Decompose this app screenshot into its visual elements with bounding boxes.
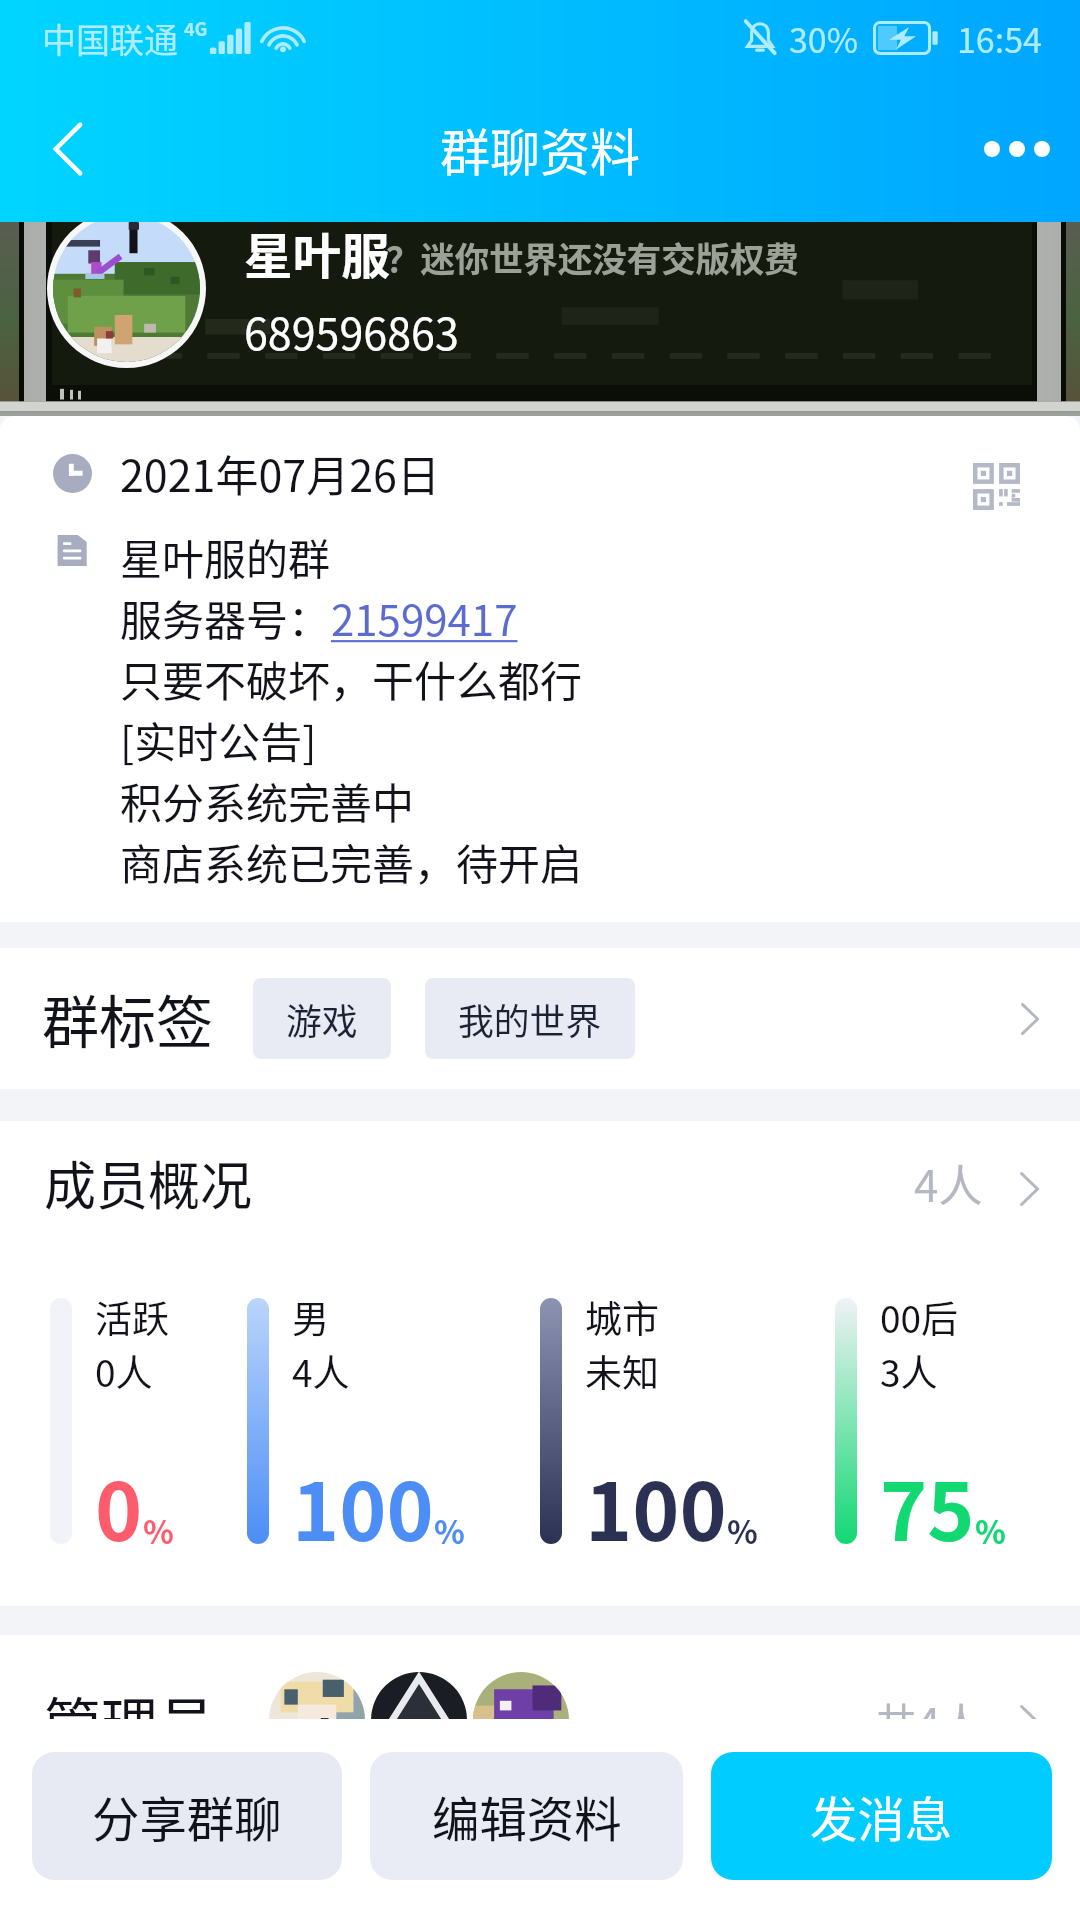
staticText: 只要不破坏，干什么都行 <box>120 648 583 709</box>
staticText: 城市 <box>585 1290 659 1344</box>
staticText: 4G <box>184 15 208 41</box>
staticText: 发消息 <box>810 1782 953 1851</box>
staticText: % <box>727 1507 758 1553</box>
staticText: 管理员 <box>44 1679 215 1762</box>
staticText: 4人 <box>292 1344 350 1398</box>
staticText: 编辑资料 <box>432 1782 622 1851</box>
staticText: 积分系统完善中 <box>120 770 415 831</box>
staticText: 75 <box>880 1448 975 1564</box>
staticText: 共4人 <box>875 1690 983 1751</box>
staticText: % <box>434 1507 465 1553</box>
staticText: [实时公告] <box>120 709 317 770</box>
button[interactable]: 发消息 <box>711 1752 1052 1880</box>
staticText: 30% <box>789 14 859 63</box>
button[interactable]: More options <box>964 105 1070 193</box>
button[interactable]: 编辑资料 <box>370 1752 683 1880</box>
staticText: 21599417 <box>331 587 518 648</box>
button[interactable]: 管理员 <box>0 1635 1080 1805</box>
staticText: 未知 <box>585 1344 659 1398</box>
staticText: 星叶服 <box>244 218 390 288</box>
staticText: 16:54 <box>957 14 1042 63</box>
staticText: 0人 <box>95 1344 153 1398</box>
button[interactable]: QR code <box>952 442 1040 530</box>
staticText: 0 <box>95 1448 143 1564</box>
staticText: 中国联通 <box>42 14 178 63</box>
button[interactable]: Back <box>24 105 112 193</box>
staticText: 00后 <box>880 1290 959 1344</box>
staticText: 4人 <box>914 1151 983 1215</box>
staticText: 星叶服的群 <box>120 526 331 587</box>
staticText: 游戏 <box>286 993 358 1045</box>
button[interactable]: Group avatar <box>53 215 200 362</box>
staticText: % <box>143 1507 174 1553</box>
staticText: 689596863 <box>244 300 459 362</box>
staticText: 群标签 <box>42 977 213 1060</box>
staticText: 100 <box>292 1448 434 1564</box>
staticText: 男 <box>292 1290 329 1344</box>
staticText: % <box>975 1507 1006 1553</box>
staticText: 100 <box>585 1448 727 1564</box>
staticText: 分享群聊 <box>92 1782 282 1851</box>
staticText: 服务器号： <box>120 587 331 648</box>
staticText: 成员概况 <box>44 1145 253 1220</box>
button[interactable]: 成员概况 <box>0 1121 1080 1220</box>
staticText: 活跃 <box>95 1290 169 1344</box>
staticText: 群聊资料 <box>440 113 640 185</box>
staticText: 商店系统已完善，待开启 <box>120 831 583 892</box>
staticText: 3人 <box>880 1344 938 1398</box>
button[interactable]: 分享群聊 <box>32 1752 342 1880</box>
staticText: 2021年07月26日 <box>120 442 440 504</box>
staticText: 我的世界 <box>458 993 602 1045</box>
staticText: ？迷你世界还没有交版权费 <box>386 232 799 282</box>
button[interactable]: 群标签 <box>0 948 1080 1089</box>
